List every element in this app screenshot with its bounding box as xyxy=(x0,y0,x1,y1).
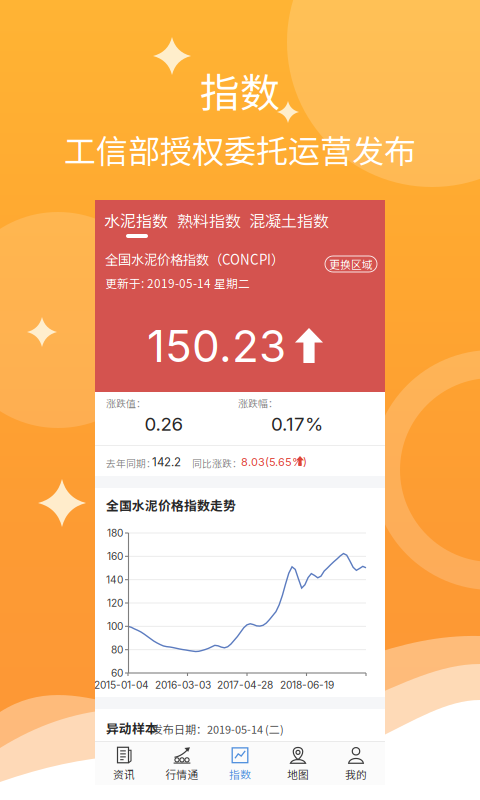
button[interactable]: 资讯 xyxy=(95,743,153,785)
staticText: 地图 xyxy=(287,766,309,782)
staticText: 指数 xyxy=(229,766,251,782)
staticText: 混凝土指数 xyxy=(249,208,329,232)
button[interactable]: 指数 xyxy=(211,743,269,785)
staticText: 0.17% xyxy=(271,413,323,435)
staticText: 全国水泥价格指数走势 xyxy=(106,496,236,514)
staticText: 熟料指数 xyxy=(177,208,241,232)
staticText: 8.03(5.65%) xyxy=(241,455,307,469)
staticText: 资讯 xyxy=(113,766,135,782)
staticText: 更新于: 2019-05-14 星期二 xyxy=(105,274,250,291)
staticText: 120 xyxy=(107,597,123,609)
staticText: 2018-06-19 xyxy=(280,679,334,691)
button[interactable]: 更换区域 xyxy=(325,256,377,272)
button[interactable]: 水泥指数 xyxy=(105,208,167,232)
staticText: 150.23 xyxy=(147,319,286,373)
staticText: 工信部授权委托运营发布 xyxy=(64,126,416,172)
staticText: 2016-03-03 xyxy=(155,679,211,691)
staticText: 涨跌值： xyxy=(106,396,146,410)
staticText: 同比涨跌： xyxy=(192,456,242,470)
staticText: 更换区域 xyxy=(329,256,373,272)
staticText: 140 xyxy=(106,574,123,586)
staticText: 指数 xyxy=(200,61,280,119)
button[interactable]: 地图 xyxy=(269,743,327,785)
staticText: 涨跌幅： xyxy=(238,396,278,410)
button[interactable]: 行情通 xyxy=(153,743,211,785)
staticText: 0.26 xyxy=(144,413,183,435)
staticText: 160 xyxy=(107,550,123,562)
staticText: 水泥指数 xyxy=(104,208,168,232)
staticText: 全国水泥价格指数（CONCPI） xyxy=(105,249,284,269)
staticText: 142.2 xyxy=(152,455,181,469)
staticText: 80 xyxy=(111,644,123,656)
staticText: 我的 xyxy=(345,766,367,782)
button[interactable]: 熟料指数 xyxy=(178,208,240,232)
button[interactable]: 我的 xyxy=(327,743,385,785)
button[interactable]: 混凝土指数 xyxy=(250,208,328,232)
staticText: 发布日期：2019-05-14 (二) xyxy=(152,721,284,737)
staticText: 异动样本 xyxy=(106,719,158,737)
staticText: 100 xyxy=(107,620,123,632)
staticText: 2015-01-04 xyxy=(94,679,149,691)
staticText: 去年同期： xyxy=(106,456,156,470)
staticText: 180 xyxy=(107,527,123,539)
staticText: 行情通 xyxy=(165,766,198,782)
staticText: 2017-04-28 xyxy=(217,679,273,691)
staticText: 60 xyxy=(111,667,123,679)
